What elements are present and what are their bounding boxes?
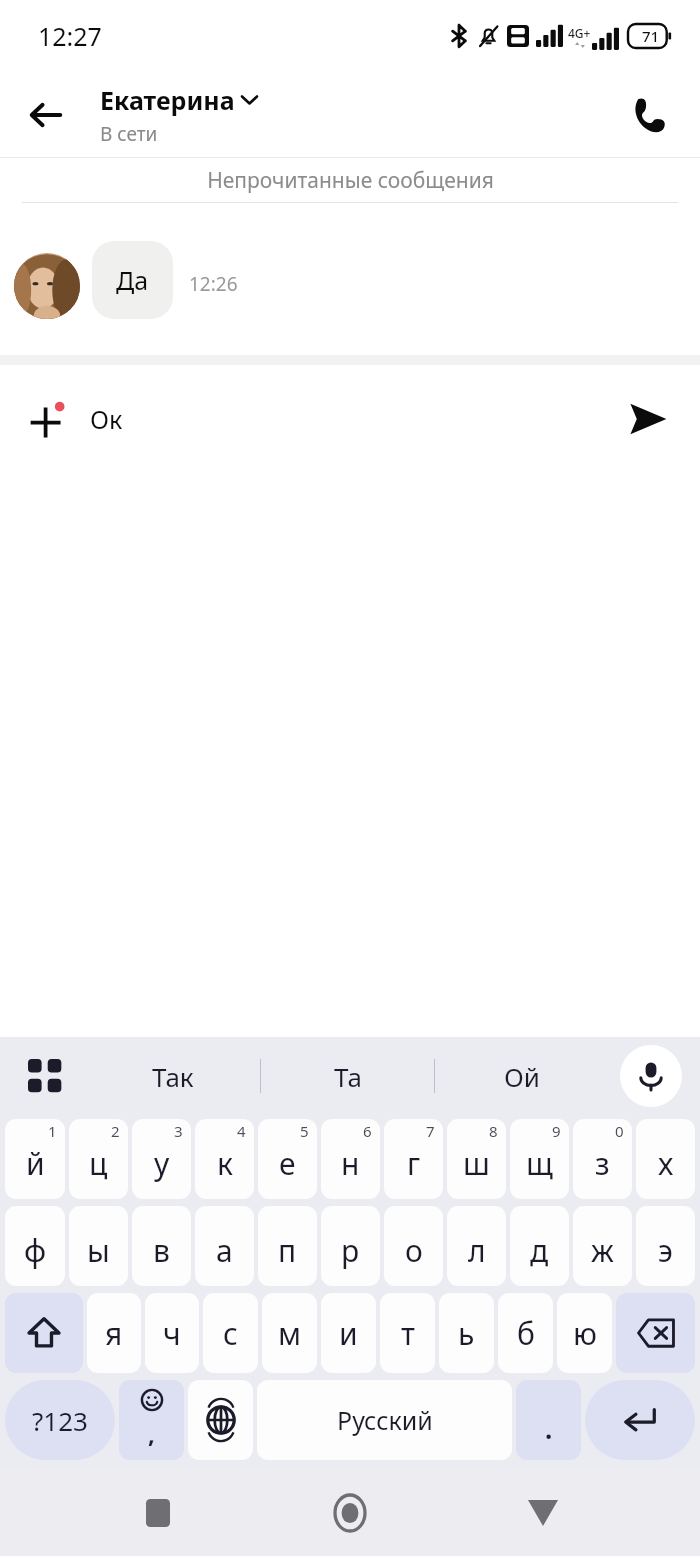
button[interactable]: т: [380, 1293, 435, 1373]
button[interactable]: к: [195, 1119, 254, 1199]
button[interactable]: Voice input: [620, 1045, 682, 1107]
staticText: м: [278, 1313, 302, 1354]
button[interactable]: ю: [557, 1293, 612, 1373]
button[interactable]: Shift: [5, 1293, 83, 1373]
staticText: Та: [334, 1059, 362, 1094]
button[interactable]: б: [498, 1293, 553, 1373]
button[interactable]: ж: [573, 1206, 632, 1286]
staticText: Да: [116, 263, 149, 297]
staticText: в: [153, 1230, 170, 1271]
staticText: й: [26, 1143, 45, 1184]
staticText: ш: [463, 1143, 490, 1184]
button[interactable]: н: [321, 1119, 380, 1199]
button[interactable]: е: [258, 1119, 317, 1199]
staticText: ?123: [32, 1403, 88, 1438]
button[interactable]: э: [636, 1206, 695, 1286]
button[interactable]: Та: [261, 1037, 434, 1115]
staticText: ь: [458, 1313, 475, 1354]
button[interactable]: л: [447, 1206, 506, 1286]
staticText: Непрочитанные сообщения: [207, 166, 494, 195]
staticText: 8: [489, 1121, 498, 1141]
staticText: э: [658, 1230, 673, 1271]
staticText: т: [401, 1313, 415, 1354]
button[interactable]: Enter: [585, 1380, 695, 1460]
staticText: у: [154, 1143, 170, 1184]
button[interactable]: г: [384, 1119, 443, 1199]
button[interactable]: Так: [86, 1037, 260, 1115]
staticText: ж: [591, 1230, 614, 1271]
button[interactable]: ш: [447, 1119, 506, 1199]
staticText: .: [545, 1411, 553, 1446]
button[interactable]: щ: [510, 1119, 569, 1199]
staticText: б: [517, 1313, 535, 1354]
button[interactable]: Да: [92, 241, 173, 319]
button[interactable]: Back: [508, 1478, 578, 1548]
staticText: Ой: [504, 1059, 540, 1094]
button[interactable]: и: [321, 1293, 376, 1373]
button[interactable]: а: [195, 1206, 254, 1286]
staticText: Екатерина: [100, 83, 235, 117]
staticText: щ: [526, 1143, 553, 1184]
staticText: ч: [163, 1313, 181, 1354]
button[interactable]: Attach: [22, 391, 78, 447]
button[interactable]: ц: [69, 1119, 128, 1199]
button[interactable]: Send: [618, 389, 678, 449]
button[interactable]: Emoji: [119, 1380, 184, 1460]
staticText: 12:26: [189, 271, 238, 297]
button[interactable]: р: [321, 1206, 380, 1286]
button[interactable]: я: [87, 1293, 141, 1373]
button[interactable]: Back: [18, 87, 74, 143]
button[interactable]: й: [5, 1119, 65, 1199]
staticText: Так: [152, 1059, 194, 1094]
staticText: к: [217, 1143, 233, 1184]
staticText: 5: [300, 1121, 309, 1141]
staticText: ы: [87, 1230, 110, 1271]
button[interactable]: д: [510, 1206, 569, 1286]
button[interactable]: в: [132, 1206, 191, 1286]
button[interactable]: м: [262, 1293, 317, 1373]
button[interactable]: .: [516, 1380, 581, 1460]
staticText: 12:27: [38, 19, 102, 53]
button[interactable]: п: [258, 1206, 317, 1286]
button[interactable]: Ок: [90, 402, 618, 436]
button[interactable]: Change language: [188, 1380, 253, 1460]
button[interactable]: с: [203, 1293, 258, 1373]
staticText: ц: [89, 1143, 108, 1184]
staticText: ,: [148, 1417, 155, 1450]
staticText: 7: [426, 1121, 435, 1141]
staticText: 2: [111, 1121, 120, 1141]
staticText: 3: [174, 1121, 183, 1141]
button[interactable]: ь: [439, 1293, 494, 1373]
staticText: з: [595, 1143, 610, 1184]
button[interactable]: ?123: [5, 1380, 115, 1460]
staticText: л: [468, 1230, 486, 1271]
staticText: В сети: [100, 121, 158, 147]
staticText: п: [278, 1230, 297, 1271]
button[interactable]: ы: [69, 1206, 128, 1286]
staticText: р: [341, 1230, 360, 1271]
staticText: ф: [24, 1230, 47, 1271]
button[interactable]: Екатерина: [100, 83, 257, 147]
button[interactable]: х: [636, 1119, 695, 1199]
button[interactable]: ф: [5, 1206, 65, 1286]
button[interactable]: з: [573, 1119, 632, 1199]
button[interactable]: Русский: [257, 1380, 512, 1460]
staticText: е: [279, 1143, 296, 1184]
button[interactable]: Keyboard options: [20, 1051, 70, 1101]
button[interactable]: ч: [145, 1293, 199, 1373]
staticText: Ок: [90, 402, 123, 436]
staticText: 0: [615, 1121, 624, 1141]
button[interactable]: Recents: [123, 1478, 193, 1548]
staticText: Русский: [337, 1403, 433, 1437]
staticText: с: [223, 1313, 238, 1354]
button[interactable]: Ой: [435, 1037, 608, 1115]
staticText: 9: [552, 1121, 561, 1141]
button[interactable]: Call: [618, 85, 678, 145]
button[interactable]: Home: [315, 1478, 385, 1548]
button[interactable]: у: [132, 1119, 191, 1199]
button[interactable]: Backspace: [616, 1293, 695, 1373]
staticText: 71: [642, 26, 660, 46]
staticText: 4G+: [568, 25, 591, 41]
staticText: д: [530, 1230, 549, 1271]
button[interactable]: о: [384, 1206, 443, 1286]
